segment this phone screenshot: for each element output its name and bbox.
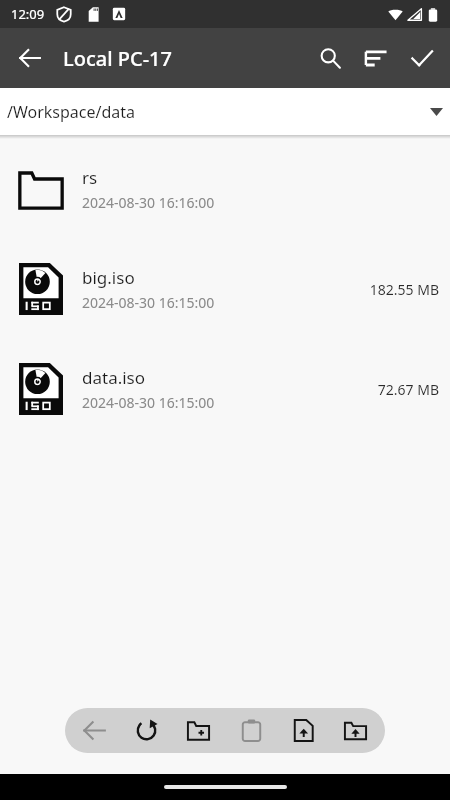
button[interactable]: Search <box>307 35 353 81</box>
button[interactable]: New folder <box>176 708 221 753</box>
button[interactable]: Sort <box>353 35 399 81</box>
staticText: 2024-08-30 16:15:00 <box>82 393 215 412</box>
staticText: 2024-08-30 16:15:00 <box>82 293 215 312</box>
button[interactable]: /Workspace/data <box>0 88 450 135</box>
button[interactable]: rs <box>0 139 450 239</box>
button[interactable]: Refresh <box>124 708 169 753</box>
button[interactable]: Paste <box>229 708 274 753</box>
button[interactable]: data.iso <box>0 339 450 439</box>
staticText: Local PC-17 <box>63 45 172 72</box>
button[interactable]: Back <box>8 36 52 80</box>
button[interactable]: big.iso <box>0 239 450 339</box>
button[interactable]: Back <box>72 708 117 753</box>
button[interactable]: Upload folder <box>333 708 378 753</box>
button[interactable]: Confirm selection <box>399 35 445 81</box>
staticText: big.iso <box>82 266 135 289</box>
staticText: 2024-08-30 16:16:00 <box>82 193 215 212</box>
staticText: 72.67 MB <box>377 380 439 399</box>
staticText: 182.55 MB <box>369 280 439 299</box>
staticText: data.iso <box>82 366 146 389</box>
staticText: /Workspace/data <box>7 101 136 123</box>
staticText: 12:09 <box>11 5 45 23</box>
button[interactable]: Upload file <box>281 708 326 753</box>
staticText: rs <box>82 166 98 189</box>
